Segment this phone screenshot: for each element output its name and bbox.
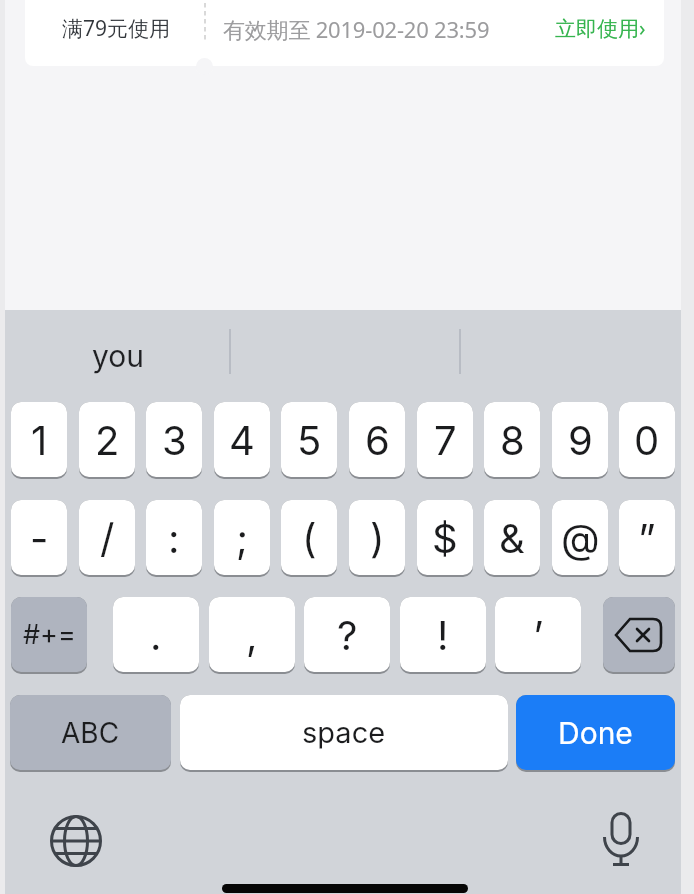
button[interactable]: [25, 0, 664, 66]
staticText: 4: [229, 416, 255, 464]
staticText: Done: [558, 715, 633, 751]
staticText: 8: [500, 416, 525, 464]
staticText: 0: [634, 416, 660, 464]
button[interactable]: -: [11, 500, 67, 575]
staticText: (: [302, 514, 317, 562]
staticText: ABC: [61, 716, 120, 750]
staticText: /: [100, 514, 115, 562]
staticText: ?: [337, 611, 358, 659]
button[interactable]: 2: [79, 402, 135, 477]
button[interactable]: [603, 597, 675, 672]
button[interactable]: 6: [349, 402, 405, 477]
staticText: !: [437, 611, 449, 659]
button[interactable]: 立即使用›: [555, 0, 646, 57]
staticText: @: [561, 514, 600, 562]
button[interactable]: ): [349, 500, 405, 575]
button[interactable]: ABC: [10, 695, 171, 770]
staticText: ”: [638, 514, 656, 562]
staticText: .: [150, 611, 162, 659]
button[interactable]: you: [92, 334, 145, 378]
button[interactable]: 4: [214, 402, 270, 477]
staticText: 2: [95, 416, 120, 464]
staticText: 满79元使用: [62, 14, 171, 43]
staticText: 5: [297, 416, 322, 464]
button[interactable]: 7: [417, 402, 473, 477]
button[interactable]: 5: [281, 402, 337, 477]
staticText: #+=: [23, 618, 76, 651]
button[interactable]: Done: [516, 695, 675, 770]
staticText: 7: [434, 416, 457, 464]
button[interactable]: ;: [214, 500, 270, 575]
staticText: -: [30, 514, 49, 562]
staticText: 1: [31, 416, 48, 464]
button[interactable]: ”: [619, 500, 675, 575]
button[interactable]: 3: [146, 402, 202, 477]
staticText: 9: [568, 416, 593, 464]
staticText: 有效期至 2019-02-20 23:59: [223, 14, 490, 44]
staticText: 3: [162, 416, 187, 464]
button[interactable]: /: [79, 500, 135, 575]
button[interactable]: ?: [304, 597, 390, 672]
staticText: ): [370, 514, 385, 562]
button[interactable]: (: [281, 500, 337, 575]
button[interactable]: @: [552, 500, 608, 575]
staticText: :: [168, 514, 180, 562]
button[interactable]: 0: [619, 402, 675, 477]
button[interactable]: .: [113, 597, 199, 672]
staticText: 6: [365, 416, 390, 464]
button[interactable]: !: [400, 597, 486, 672]
button[interactable]: ,: [209, 597, 295, 672]
button[interactable]: [50, 815, 102, 867]
button[interactable]: space: [180, 695, 508, 770]
staticText: $: [432, 514, 458, 562]
staticText: 立即使用›: [555, 14, 646, 43]
staticText: &: [499, 514, 525, 562]
staticText: ;: [236, 514, 249, 562]
button[interactable]: 9: [552, 402, 608, 477]
staticText: you: [92, 338, 145, 374]
button[interactable]: 8: [484, 402, 540, 477]
button[interactable]: 1: [11, 402, 67, 477]
button[interactable]: :: [146, 500, 202, 575]
staticText: ,: [246, 611, 258, 659]
button[interactable]: #+=: [11, 597, 87, 672]
button[interactable]: ’: [495, 597, 581, 672]
button[interactable]: &: [484, 500, 540, 575]
staticText: space: [302, 715, 386, 750]
button[interactable]: [603, 812, 639, 870]
button[interactable]: $: [417, 500, 473, 575]
staticText: ’: [533, 611, 544, 659]
